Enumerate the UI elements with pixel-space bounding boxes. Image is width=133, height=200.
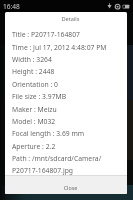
staticText: Width : 3264 (12, 55, 52, 64)
staticText: Details (14, 15, 127, 23)
staticText: File size : 3.97MB (12, 92, 67, 101)
staticText: Model : M032 (12, 117, 56, 126)
staticText: P20717-164807.jpg (12, 166, 74, 175)
staticText: Orientation : 0 (12, 80, 58, 89)
staticText: 16:48 (3, 2, 20, 11)
staticText: Time : Jul 17, 2012 4:48:07 PM (12, 43, 107, 52)
other: Status icons (107, 3, 130, 10)
staticText: Title : P20717-164807 (12, 30, 80, 39)
staticText: Path : /mnt/sdcard/Camera/ (12, 154, 102, 163)
staticText: Close (14, 184, 127, 191)
staticText: Focal length : 3.69 mm (12, 129, 85, 138)
button[interactable]: Close (5, 175, 127, 194)
staticText: Height : 2448 (12, 67, 55, 76)
staticText: Aperture : 2.2 (12, 142, 56, 151)
staticText: Maker : Meizu (12, 105, 57, 114)
